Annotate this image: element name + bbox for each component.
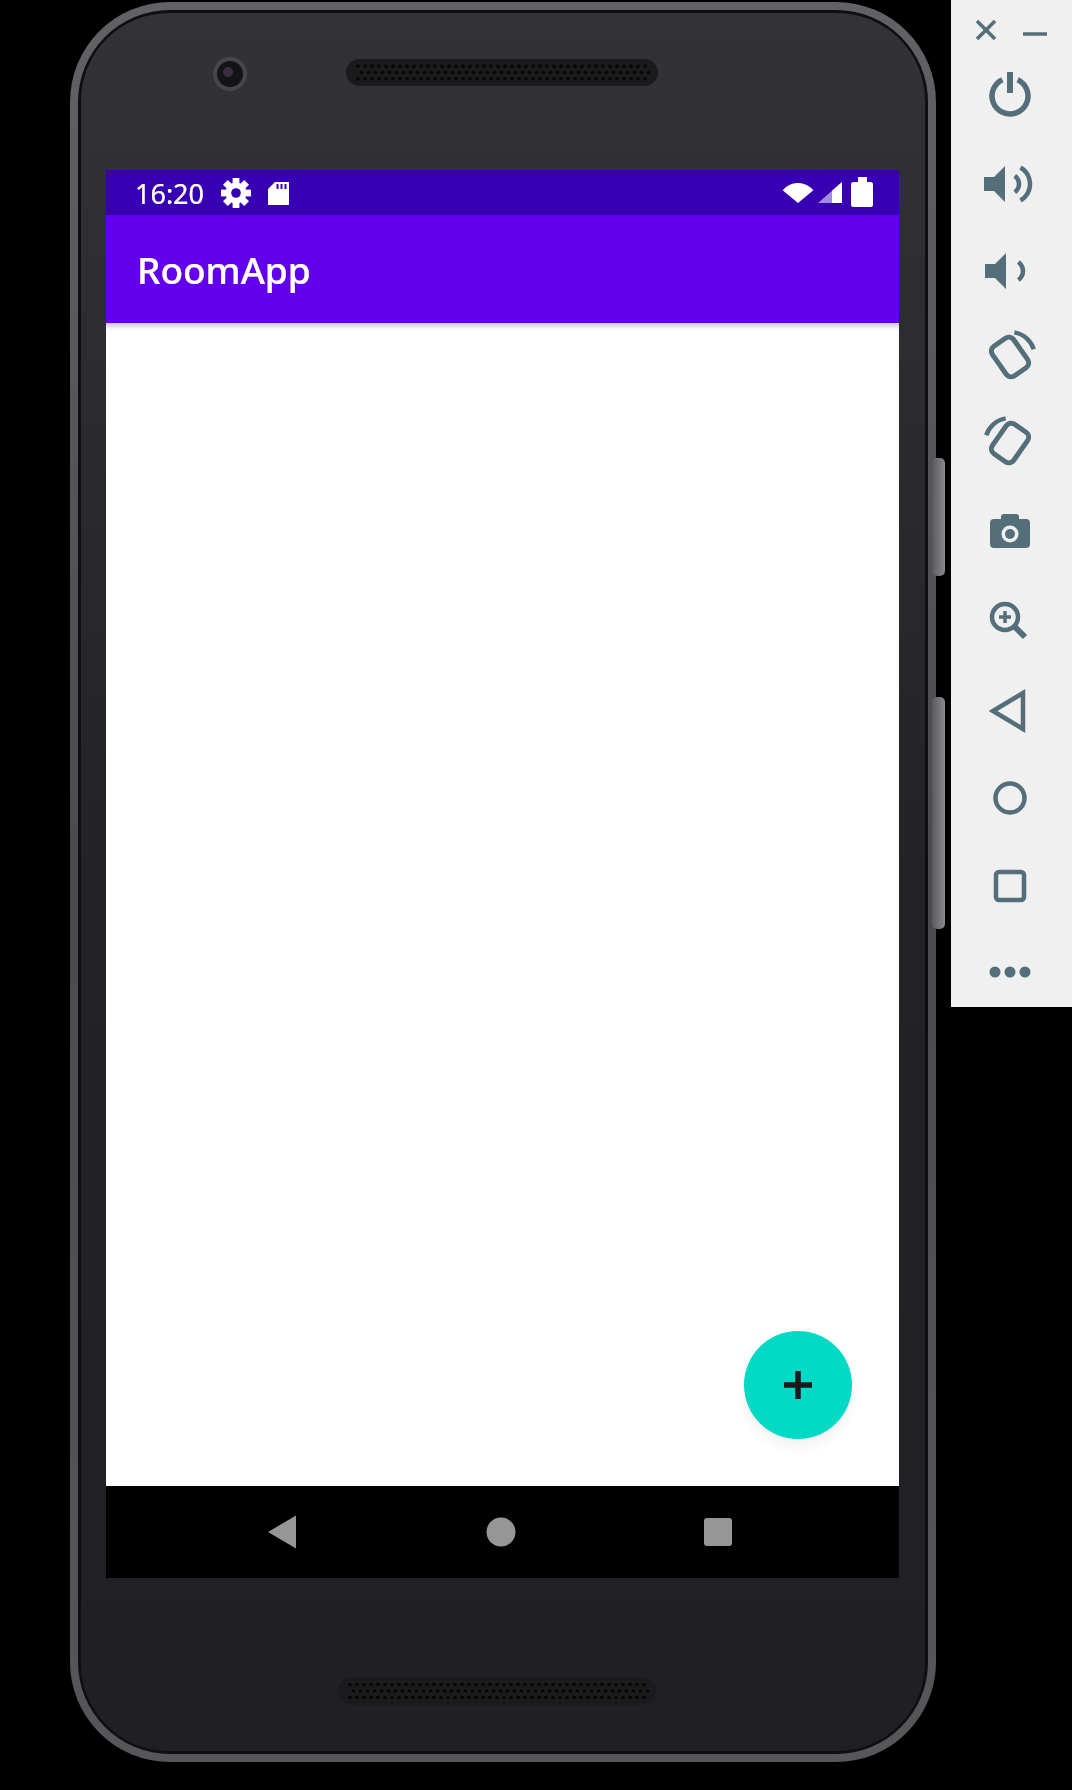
button[interactable] xyxy=(980,413,1040,473)
button[interactable] xyxy=(744,1331,852,1439)
button[interactable] xyxy=(980,241,1040,301)
button[interactable] xyxy=(688,1502,748,1562)
button[interactable] xyxy=(980,592,1040,652)
button[interactable] xyxy=(980,66,1040,126)
button[interactable] xyxy=(471,1502,531,1562)
button[interactable] xyxy=(968,12,1004,48)
button[interactable] xyxy=(252,1502,312,1562)
button[interactable] xyxy=(980,154,1040,214)
button[interactable] xyxy=(980,503,1040,563)
button[interactable] xyxy=(980,768,1040,828)
staticText: RoomApp xyxy=(137,244,311,294)
button[interactable] xyxy=(1017,12,1053,48)
button[interactable] xyxy=(980,681,1040,741)
button[interactable] xyxy=(980,327,1040,387)
staticText: 16:20 xyxy=(135,175,205,212)
button[interactable] xyxy=(980,856,1040,916)
button[interactable] xyxy=(980,942,1040,1002)
